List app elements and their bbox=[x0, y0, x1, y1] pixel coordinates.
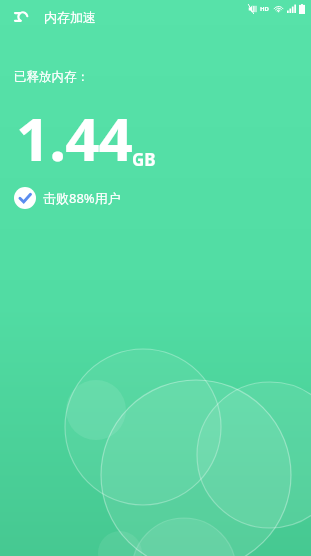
staticText: GB bbox=[132, 148, 156, 171]
staticText: 1.44 bbox=[16, 97, 132, 179]
staticText: 击败88%用户 bbox=[43, 189, 121, 207]
staticText: 内存加速 bbox=[44, 9, 96, 25]
button[interactable]: 击败88%用户 bbox=[14, 187, 121, 209]
button[interactable]: 返回 bbox=[10, 5, 34, 29]
staticText: 已释放内存： bbox=[14, 69, 89, 85]
staticText: HD bbox=[260, 5, 269, 13]
